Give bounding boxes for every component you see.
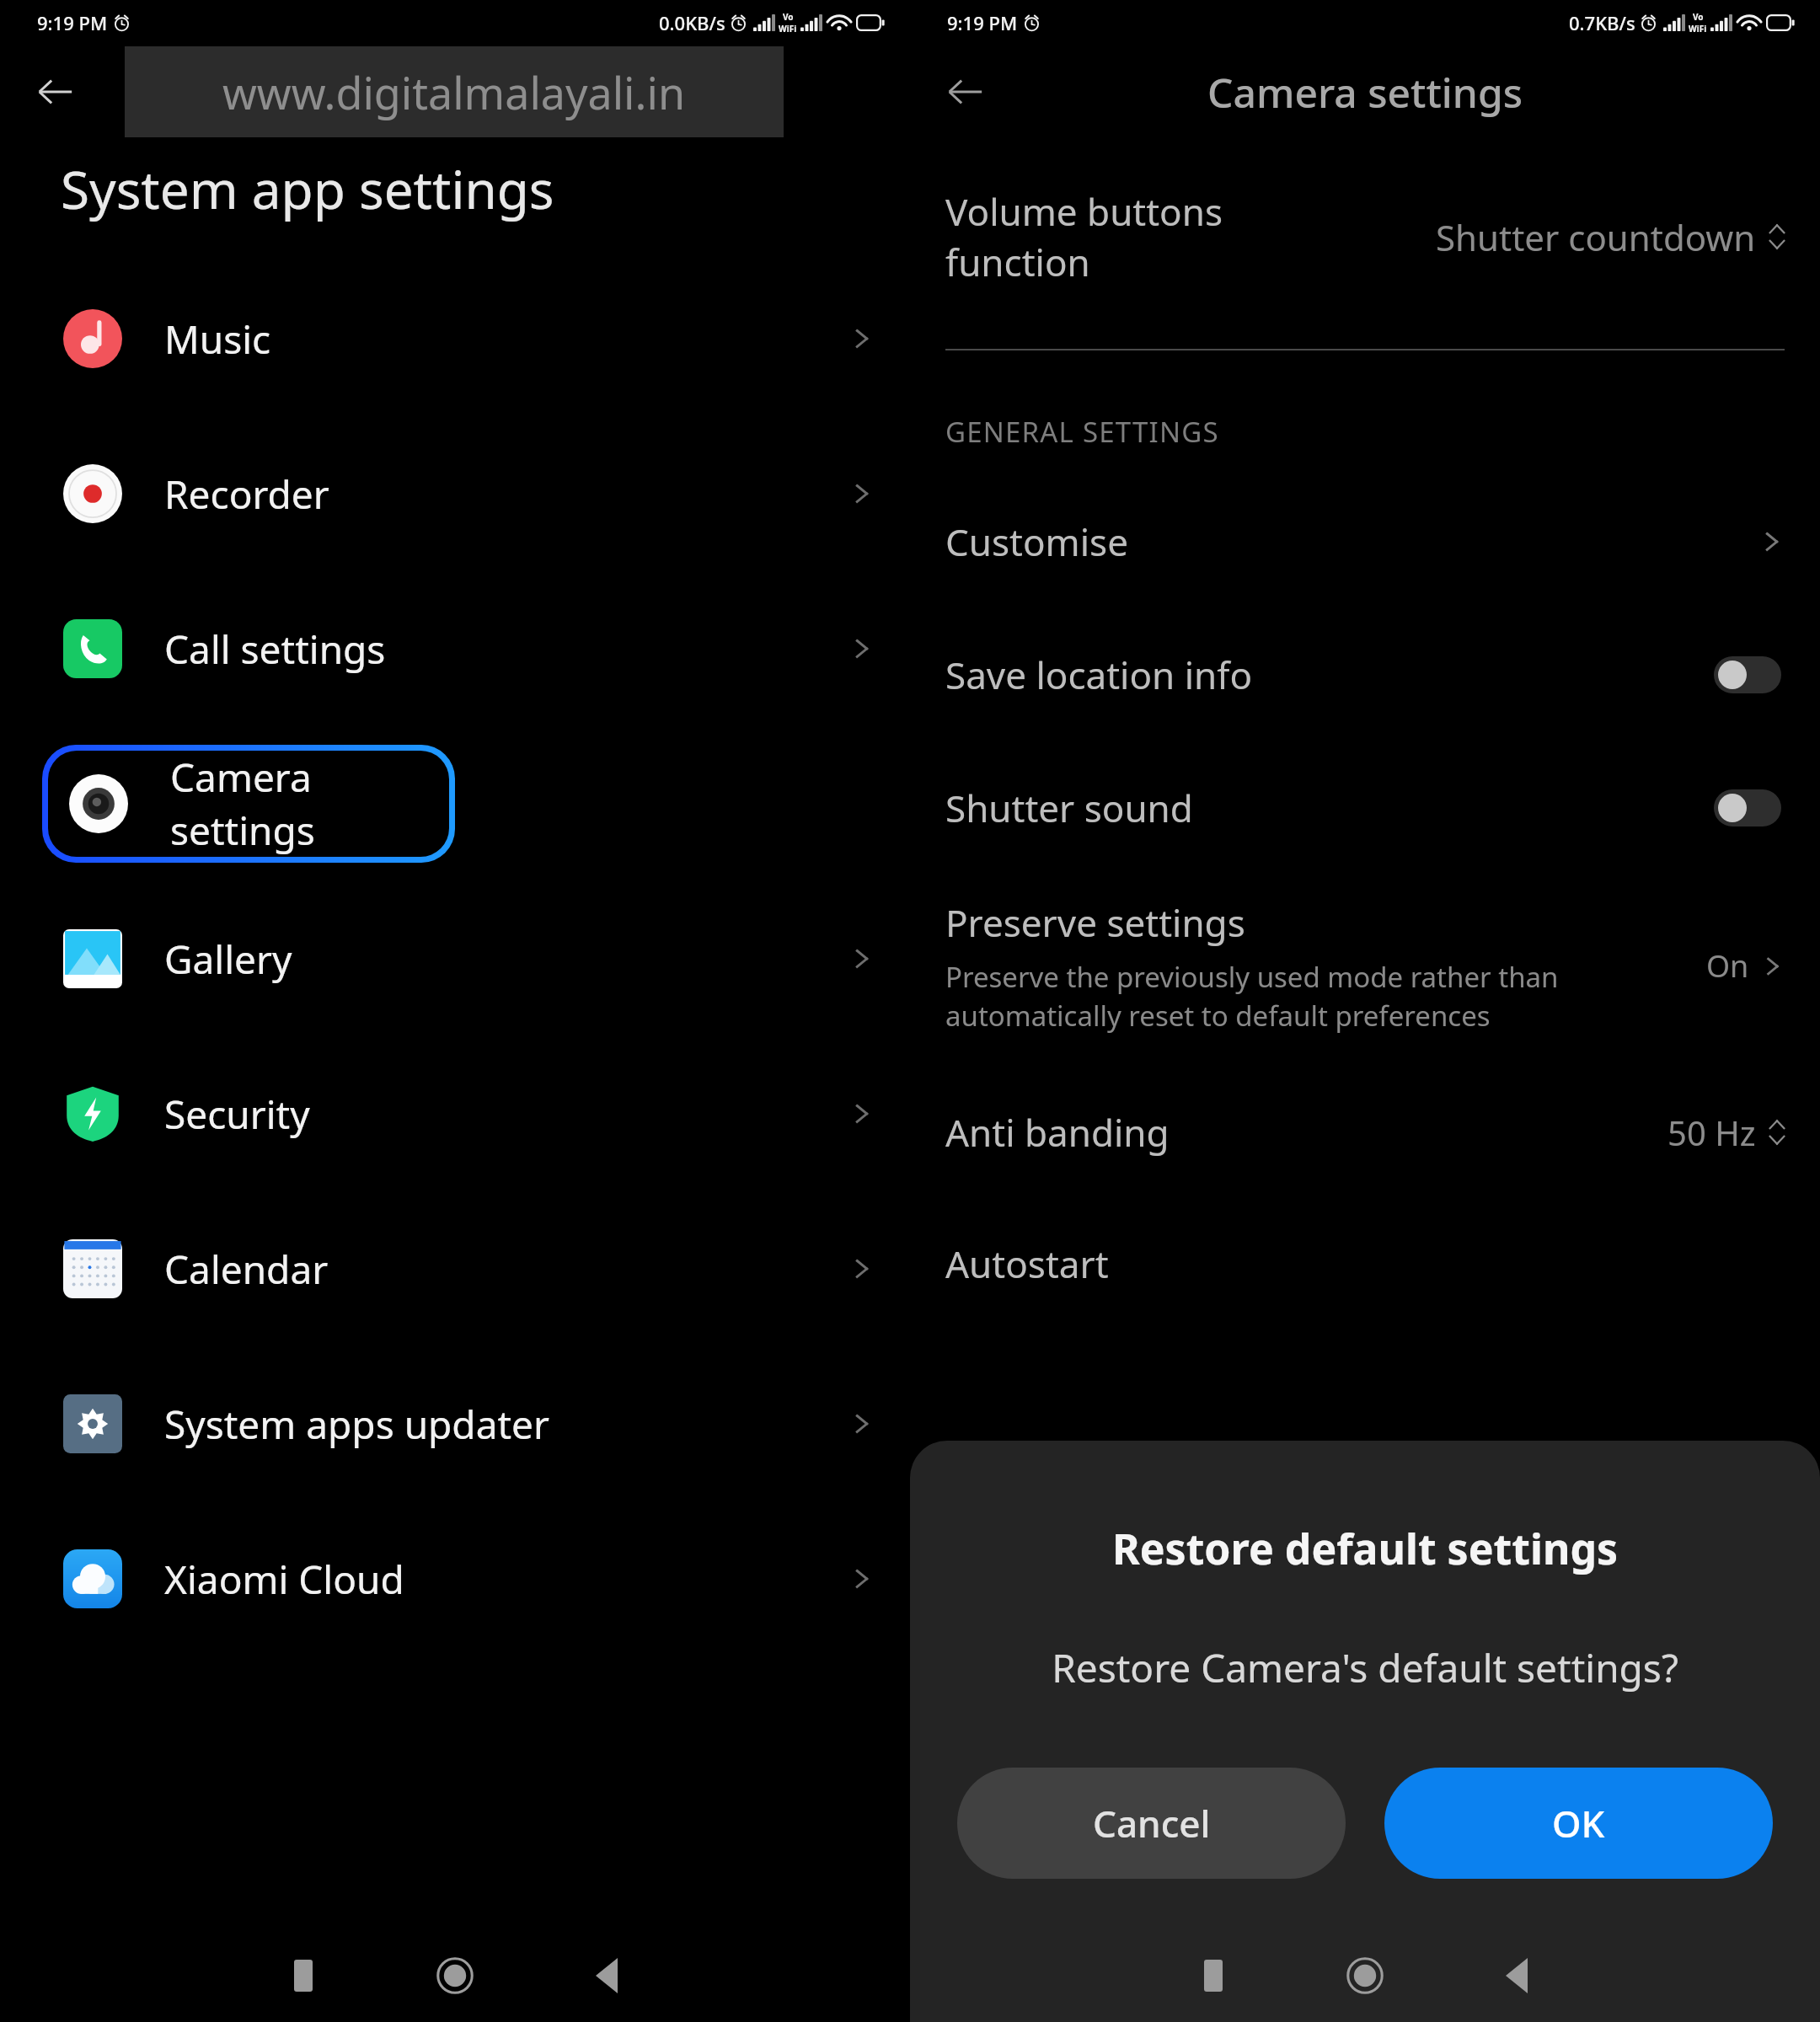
staticText: OK (1552, 1798, 1605, 1848)
staticText: 50 Hz (1667, 1110, 1756, 1155)
staticText: Vo (783, 11, 794, 23)
staticText: 0.0KB/s (659, 10, 725, 35)
button[interactable]: Recorder (0, 435, 910, 553)
button[interactable]: Preserve settings (910, 897, 1820, 1035)
button[interactable]: Home (1331, 1942, 1399, 2009)
staticText: Recorder (164, 468, 848, 521)
staticText: Cancel (1093, 1798, 1211, 1848)
staticText: GENERAL SETTINGS (945, 413, 1219, 451)
button[interactable]: Back (1483, 1942, 1550, 2009)
staticText: 0.7KB/s (1569, 10, 1635, 35)
button[interactable]: Recent apps (1180, 1942, 1247, 2009)
button[interactable]: Customise (910, 493, 1820, 591)
button[interactable]: Back (934, 61, 996, 123)
staticText: Autostart (945, 1238, 1786, 1289)
staticText: Calendar (164, 1243, 848, 1296)
staticText: System apps updater (164, 1398, 848, 1451)
staticText: Gallery (164, 933, 848, 986)
staticText: Volume buttons function (945, 186, 1436, 287)
staticText: Preserve the previously used mode rather… (945, 958, 1559, 1035)
button[interactable]: Home (421, 1942, 489, 2009)
button[interactable]: Xiaomi Cloud (0, 1520, 910, 1638)
staticText: 9:19 PM (947, 10, 1018, 35)
button[interactable]: Camera settings (48, 751, 449, 857)
staticText: On (1706, 945, 1749, 987)
staticText: Customise (945, 516, 1758, 567)
staticText: Anti banding (945, 1107, 1667, 1158)
staticText: WiFi (1689, 23, 1707, 35)
staticText: Xiaomi Cloud (164, 1553, 848, 1606)
button[interactable]: Home (1331, 1942, 1399, 2009)
button[interactable]: Gallery (0, 900, 910, 1018)
button[interactable]: Call settings (0, 590, 910, 708)
button[interactable]: OK (1384, 1768, 1773, 1879)
staticText: Shutter countdown (1436, 213, 1756, 261)
button[interactable]: Cancel (957, 1768, 1346, 1879)
staticText: Music (164, 313, 848, 366)
button[interactable]: Save location info (910, 626, 1820, 724)
button[interactable]: Back (24, 61, 86, 123)
button[interactable]: Volume buttons function (910, 174, 1820, 300)
button[interactable]: Toggle off (1714, 656, 1781, 693)
button[interactable]: Recent apps (1180, 1942, 1247, 2009)
button[interactable]: Back (573, 1942, 640, 2009)
staticText: WiFi (779, 23, 797, 35)
staticText: Preserve settings (945, 897, 1245, 948)
staticText: Call settings (164, 623, 848, 676)
button[interactable]: Music (0, 280, 910, 398)
button[interactable]: Recent apps (270, 1942, 337, 2009)
staticText: Save location info (945, 650, 1714, 700)
staticText: Security (164, 1088, 848, 1141)
button[interactable]: Back (1483, 1942, 1550, 2009)
button[interactable]: Calendar (0, 1210, 910, 1328)
button[interactable]: Autostart (910, 1215, 1820, 1313)
button[interactable]: System apps updater (0, 1365, 910, 1483)
staticText: www.digitalmalayali.in (222, 62, 686, 122)
button[interactable]: Toggle off (1714, 789, 1781, 826)
staticText: Camera settings (1207, 65, 1523, 120)
button[interactable]: Anti banding (910, 1083, 1820, 1181)
staticText: Vo (1693, 11, 1704, 23)
button[interactable]: Security (0, 1055, 910, 1173)
button[interactable]: Shutter sound (910, 759, 1820, 857)
staticText: System app settings (61, 153, 554, 224)
staticText: Camera settings (170, 751, 449, 857)
staticText: Shutter sound (945, 783, 1714, 833)
staticText: 9:19 PM (37, 10, 108, 35)
staticText: Restore default settings (910, 1520, 1820, 1577)
staticText: Restore Camera's default settings? (910, 1641, 1820, 1694)
